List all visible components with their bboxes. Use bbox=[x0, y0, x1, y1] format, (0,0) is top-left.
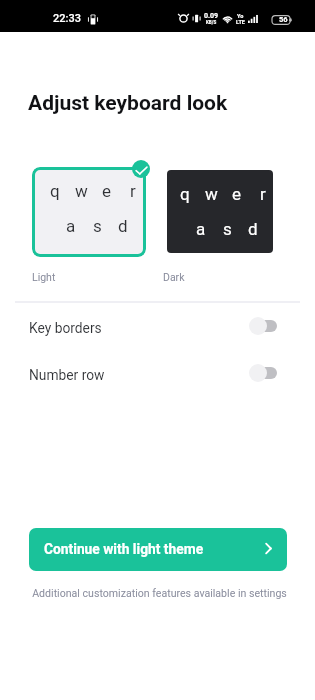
staticText: Adjust keyboard look bbox=[28, 91, 228, 116]
staticText: q bbox=[50, 181, 60, 201]
staticText: w bbox=[75, 181, 88, 201]
staticText: a bbox=[66, 216, 76, 236]
staticText: 22:33 bbox=[53, 12, 81, 25]
staticText: e bbox=[102, 181, 112, 201]
staticText: 56 bbox=[279, 15, 288, 24]
staticText: Yo bbox=[237, 13, 244, 19]
staticText: a bbox=[196, 219, 206, 239]
button[interactable]: Number row bbox=[0, 353, 315, 403]
staticText: Continue with light theme bbox=[44, 541, 204, 557]
staticText: Light bbox=[32, 271, 56, 283]
staticText: Additional customization features availa… bbox=[2, 587, 315, 599]
staticText: Number row bbox=[29, 367, 105, 383]
staticText: s bbox=[93, 216, 102, 236]
button[interactable]: Key borders bbox=[0, 306, 315, 356]
other: Next bbox=[265, 543, 272, 554]
staticText: KB/S bbox=[206, 20, 217, 25]
staticText: 0.09 bbox=[204, 12, 219, 20]
button[interactable]: Continue with light theme bbox=[29, 528, 287, 571]
staticText: Dark bbox=[163, 271, 185, 283]
button[interactable]: Dark theme bbox=[163, 167, 273, 282]
staticText: r bbox=[260, 184, 266, 204]
staticText: LTE bbox=[236, 19, 245, 25]
staticText: w bbox=[205, 184, 218, 204]
staticText: s bbox=[223, 219, 232, 239]
staticText: d bbox=[248, 219, 258, 239]
staticText: r bbox=[130, 181, 136, 201]
staticText: Key borders bbox=[29, 320, 102, 336]
staticText: q bbox=[180, 184, 190, 204]
staticText: d bbox=[118, 216, 128, 236]
button[interactable]: Light theme, selected bbox=[32, 167, 146, 282]
staticText: e bbox=[232, 184, 242, 204]
